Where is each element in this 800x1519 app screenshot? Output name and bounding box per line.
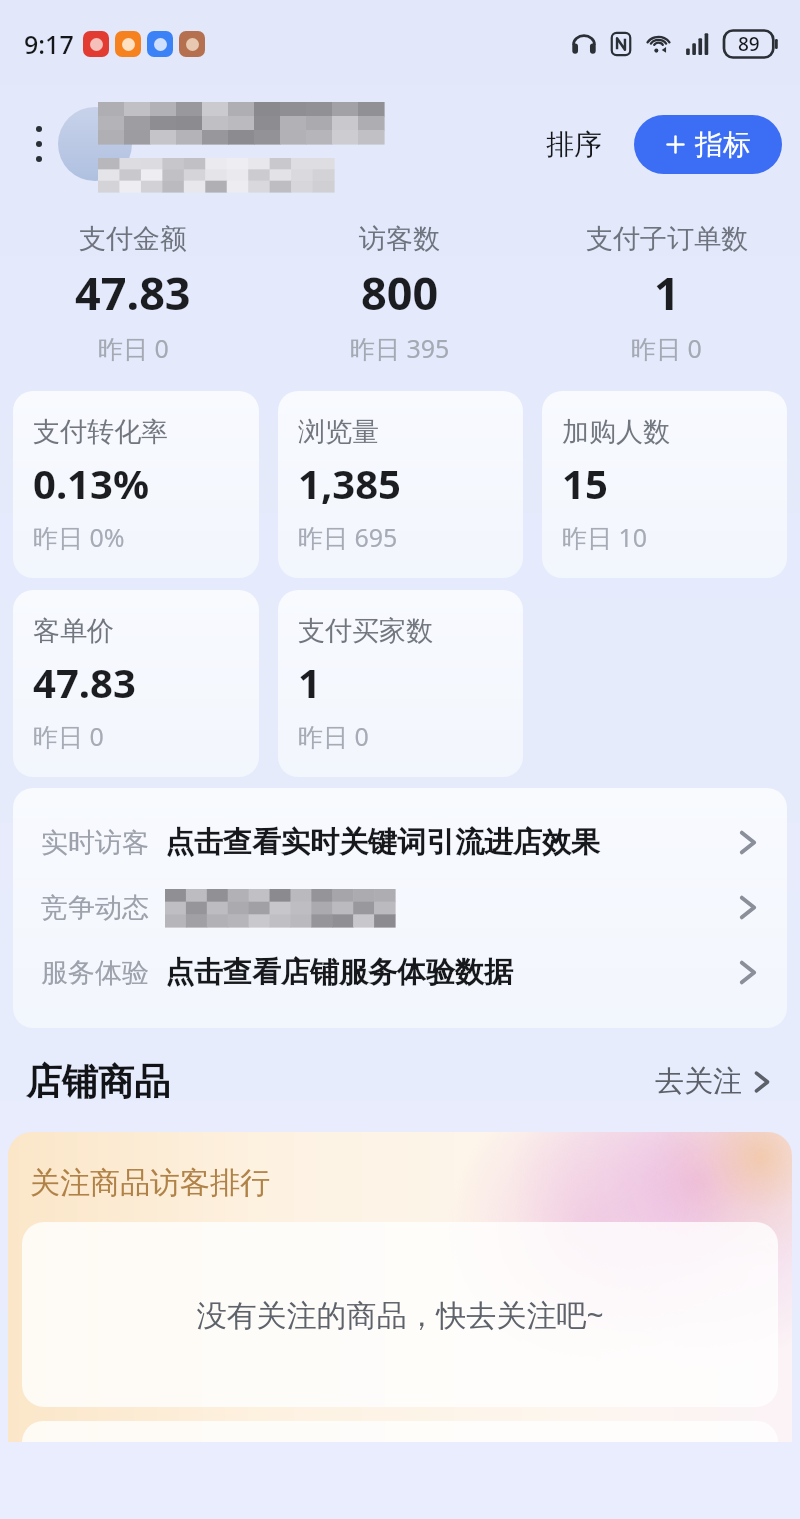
button[interactable]: 服务体验 xyxy=(13,940,787,1005)
staticText: 9:17 xyxy=(24,27,74,61)
button[interactable]: 去关注 xyxy=(649,1057,778,1106)
staticText: 47.83 xyxy=(75,262,191,323)
staticText: 15 xyxy=(562,456,608,510)
staticText: 昨日 0% xyxy=(33,520,125,554)
staticText: 1,385 xyxy=(298,456,401,510)
staticText: 昨日 0 xyxy=(631,331,702,365)
staticText: 昨日 0 xyxy=(33,719,104,753)
staticText: 支付转化率 xyxy=(33,415,168,449)
staticText: 1 xyxy=(654,262,680,323)
button[interactable]: 支付金额 xyxy=(0,222,266,365)
button[interactable]: 加购人数 xyxy=(542,391,787,578)
staticText: 点击查看店铺服务体验数据 xyxy=(165,954,513,991)
button[interactable]: More options xyxy=(28,114,50,174)
staticText: 昨日 0 xyxy=(98,331,169,365)
staticText: 昨日 395 xyxy=(350,331,450,365)
button[interactable]: 支付转化率 xyxy=(13,391,259,578)
staticText: 指标 xyxy=(695,127,751,162)
staticText: 昨日 0 xyxy=(298,719,369,753)
staticText: 实时访客 xyxy=(41,826,149,860)
button[interactable]: 支付买家数 xyxy=(278,590,523,777)
staticText: 服务体验 xyxy=(41,956,149,990)
staticText: 没有关注的商品，快去关注吧~ xyxy=(196,1294,604,1335)
button[interactable]: 实时访客 xyxy=(13,810,787,875)
staticText: 支付买家数 xyxy=(298,614,433,648)
staticText: 浏览量 xyxy=(298,415,379,449)
staticText: 访客数 xyxy=(359,222,440,256)
button[interactable]: 排序 xyxy=(536,119,612,170)
button[interactable]: 支付子订单数 xyxy=(533,222,800,365)
staticText: 支付金额 xyxy=(79,222,187,256)
staticText: 关注商品访客排行 xyxy=(30,1164,270,1202)
button[interactable]: 竞争动态 xyxy=(13,875,787,940)
staticText: 昨日 10 xyxy=(562,520,648,554)
staticText: 89 xyxy=(738,31,760,57)
staticText: 昨日 695 xyxy=(298,520,398,554)
button[interactable]: 指标 xyxy=(634,115,782,174)
button[interactable]: 浏览量 xyxy=(278,391,523,578)
staticText: 竞争动态 xyxy=(41,891,149,925)
staticText: 800 xyxy=(361,262,439,323)
staticText: 0.13% xyxy=(33,456,149,510)
button[interactable]: 访客数 xyxy=(266,222,533,365)
staticText: 支付子订单数 xyxy=(586,222,748,256)
button[interactable]: 客单价 xyxy=(13,590,259,777)
staticText: 排序 xyxy=(546,127,602,162)
staticText: 点击查看实时关键词引流进店效果 xyxy=(165,824,600,861)
staticText: 加购人数 xyxy=(562,415,670,449)
staticText: 客单价 xyxy=(33,614,114,648)
staticText: 1 xyxy=(298,655,321,709)
staticText: 47.83 xyxy=(33,655,136,709)
staticText: 去关注 xyxy=(655,1063,742,1100)
staticText: 店铺商品 xyxy=(26,1059,170,1104)
